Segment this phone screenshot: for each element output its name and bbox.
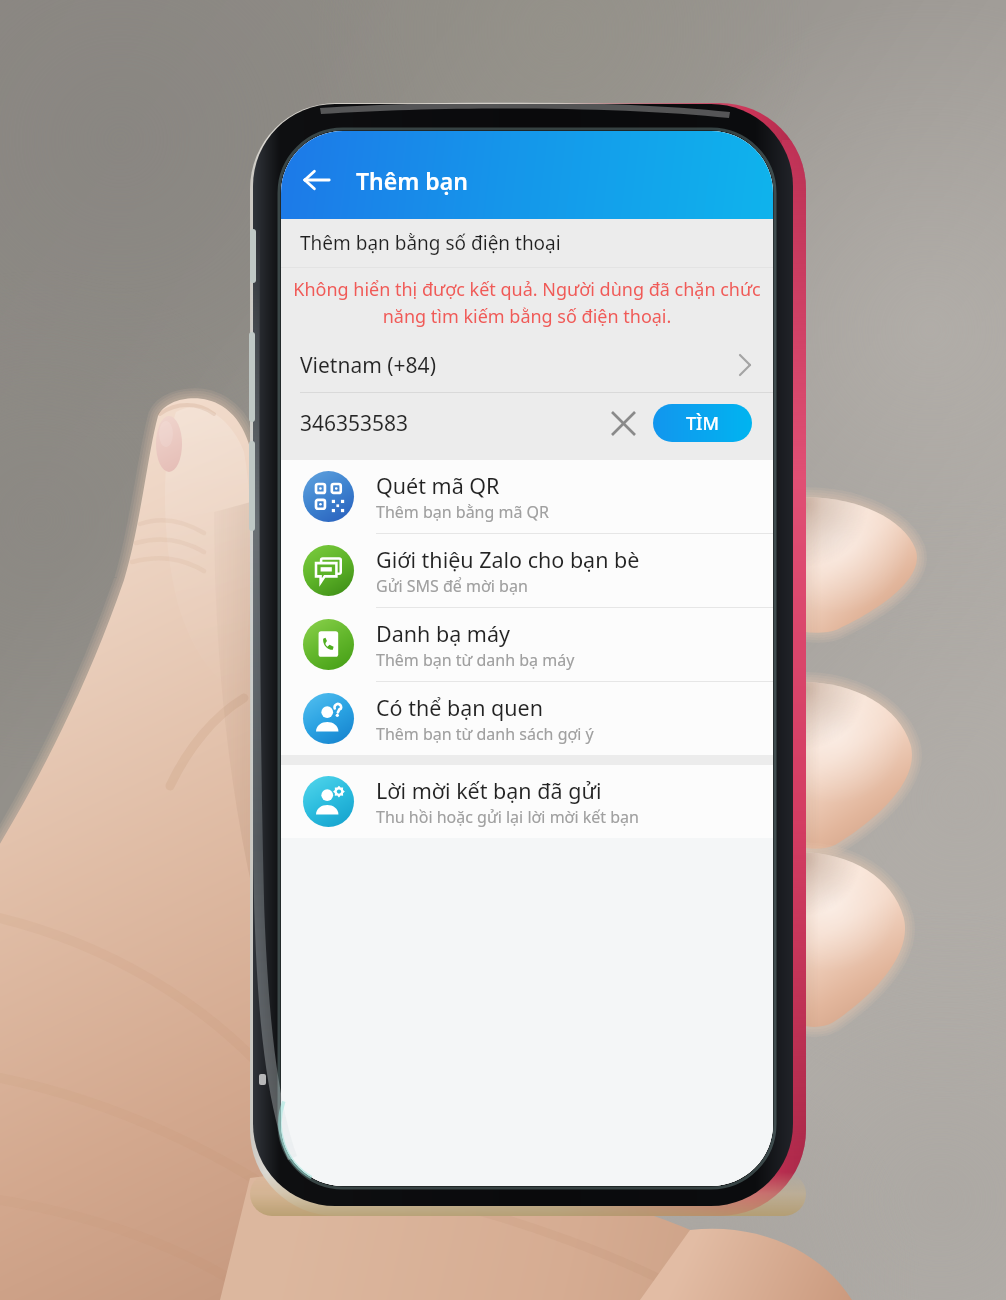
staticText: Thêm bạn từ danh bạ máy (376, 649, 575, 671)
button[interactable]: Có thể bạn quen (281, 682, 773, 755)
staticText: Có thể bạn quen (376, 693, 544, 722)
button[interactable]: Danh bạ máy (281, 608, 773, 681)
staticText: Thêm bạn bằng mã QR (376, 501, 550, 523)
staticText: Quét mã QR (376, 471, 500, 500)
staticText: Giới thiệu Zalo cho bạn bè (376, 545, 640, 574)
staticText: 346353583 (300, 409, 601, 438)
button[interactable]: Giới thiệu Zalo cho bạn bè (281, 534, 773, 607)
button[interactable]: Clear text (601, 401, 645, 445)
staticText: Thêm bạn từ danh sách gợi ý (376, 723, 594, 745)
staticText: Danh bạ máy (376, 619, 510, 648)
staticText: Vietnam (+84) (300, 351, 739, 380)
button[interactable]: Vietnam (+84) (281, 338, 773, 392)
button[interactable]: Lời mời kết bạn đã gửi (281, 765, 773, 838)
staticText: TÌM (686, 411, 720, 436)
staticText: Gửi SMS để mời bạn (376, 575, 528, 597)
staticText: Thêm bạn (356, 165, 468, 196)
staticText: Lời mời kết bạn đã gửi (376, 776, 602, 805)
button[interactable]: Quét mã QR (281, 460, 773, 533)
staticText: Thu hồi hoặc gửi lại lời mời kết bạn (376, 806, 639, 828)
staticText: Thêm bạn bằng số điện thoại (300, 230, 561, 256)
button[interactable]: Back (294, 157, 340, 203)
button[interactable]: TÌM (653, 404, 752, 442)
staticText: Không hiển thị được kết quả. Người dùng … (287, 277, 767, 328)
